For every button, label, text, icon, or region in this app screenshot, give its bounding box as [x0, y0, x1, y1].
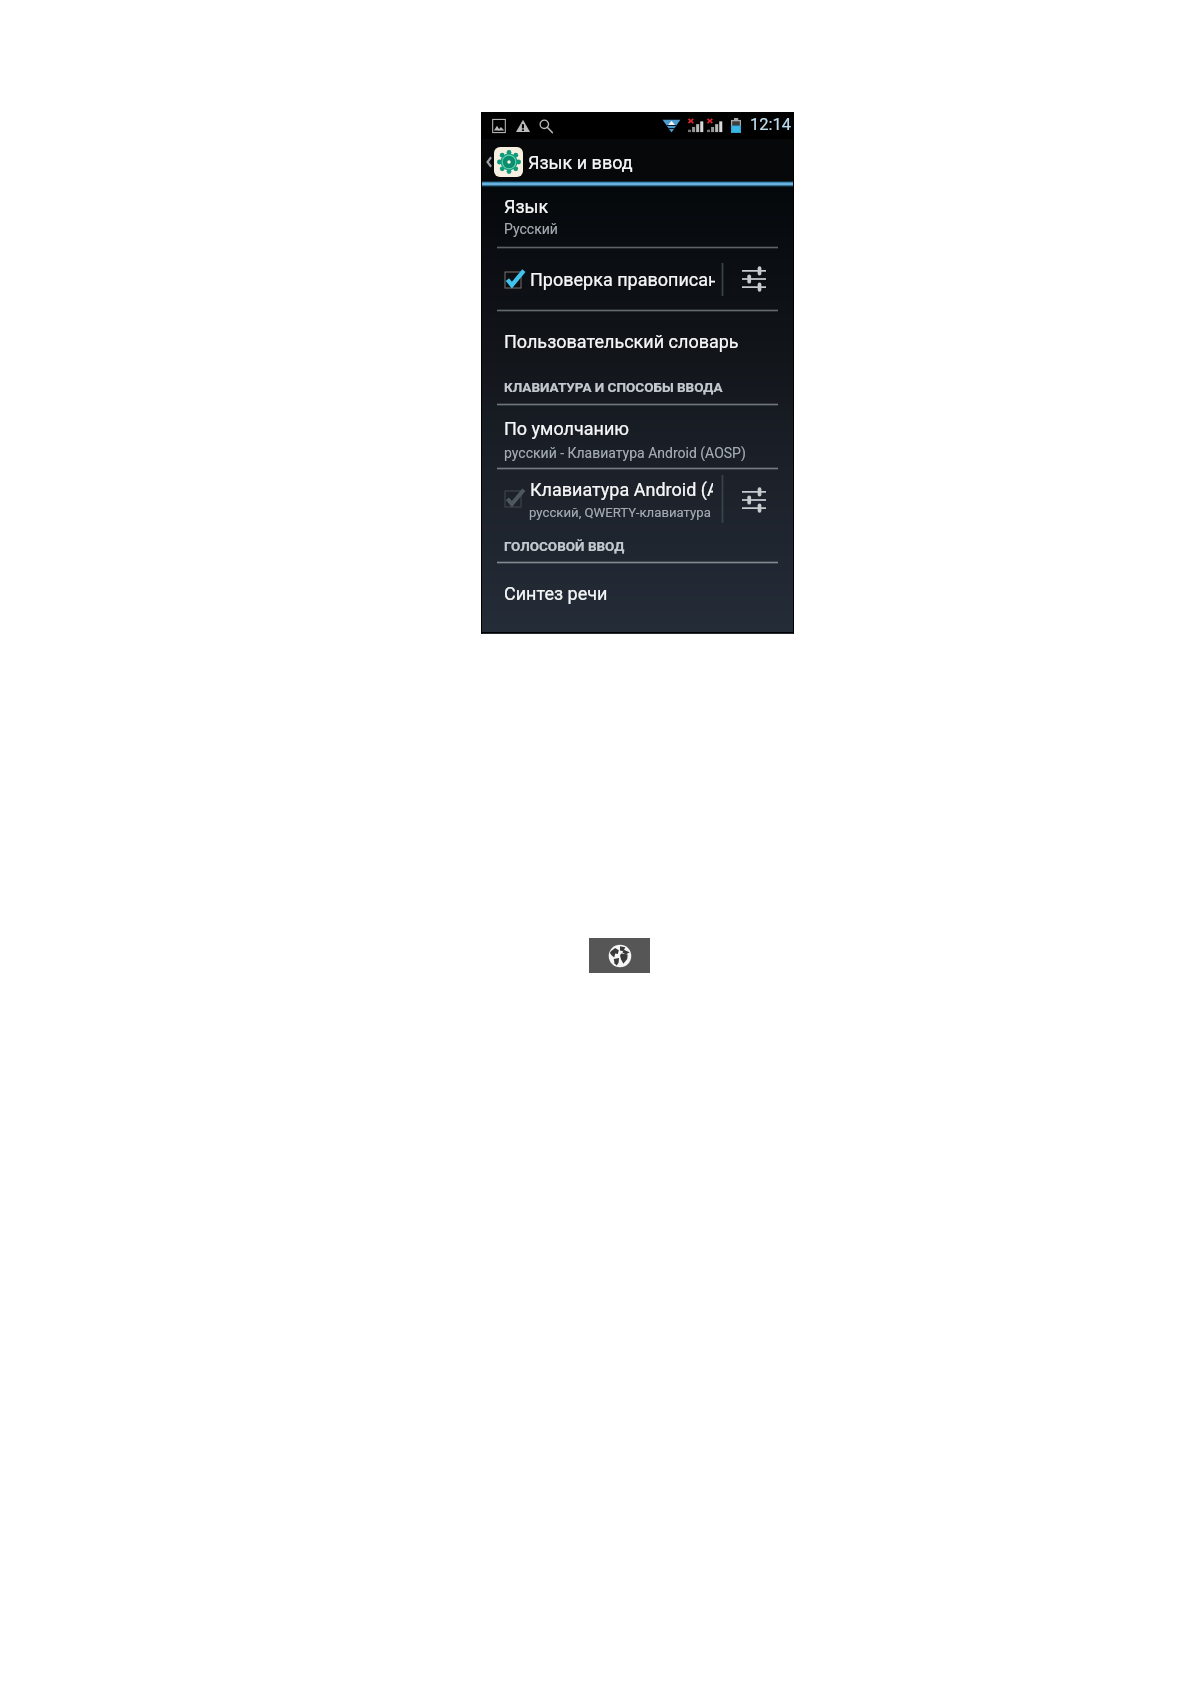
button[interactable]: Настройки клавиатуры Android [726, 472, 794, 526]
other: Back [486, 155, 492, 169]
staticText: Язык и ввод [528, 152, 633, 173]
staticText: Проверка правописания [530, 269, 715, 290]
button[interactable]: Клавиатура Android (AOSP) [481, 469, 722, 535]
staticText: 12:14 [750, 115, 792, 134]
staticText: КЛАВИАТУРА И СПОСОБЫ ВВОДА [504, 379, 723, 395]
staticText: Русский [504, 221, 558, 237]
staticText: русский - Клавиатура Android (AOSP) [504, 445, 746, 461]
staticText: Пользовательский словарь [504, 331, 739, 352]
button[interactable]: Синтез речи [481, 563, 794, 618]
staticText: Язык [504, 196, 549, 217]
staticText: Синтез речи [504, 583, 608, 604]
button[interactable]: По умолчанию [481, 405, 794, 467]
button[interactable]: Язык [481, 187, 794, 248]
staticText: русский, QWERTY-клавиатура [529, 505, 711, 520]
button[interactable]: Пользовательский словарь [481, 311, 794, 363]
button[interactable] [481, 139, 794, 183]
staticText: ГОЛОСОВОЙ ВВОД [504, 538, 625, 554]
button[interactable]: Проверка правописания [481, 249, 722, 311]
staticText: Клавиатура Android (AOSP) [530, 479, 713, 500]
staticText: По умолчанию [504, 418, 630, 439]
button[interactable]: Настройки проверки правописания [726, 256, 794, 304]
